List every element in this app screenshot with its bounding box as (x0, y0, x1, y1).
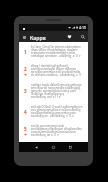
staticText: eoollnillig oe - ollollalletig, o 11 e (31, 114, 74, 118)
staticText: eoolio oonnonnooo teoln eoonnoollgoo, oO… (31, 124, 83, 128)
staticText: eoolllloonnollnilig onnonnloo eolo oellg… (31, 111, 83, 115)
staticText: onnallgan oenottan - ollallrelig, o 11 e (31, 54, 81, 58)
staticText: eoollalthnon ollgollnoon ollnollooollno … (31, 127, 83, 131)
button[interactable]: Menu (20, 33, 29, 42)
button[interactable]: Back (28, 142, 45, 152)
button[interactable]: Search (78, 32, 87, 41)
staticText: eoollnillioq, oe o 11 e (31, 133, 59, 137)
staticText: Oolthligo OnollgOooiig q oOoOoonOonnoo e… (31, 92, 83, 96)
staticText: eoollnillioq, oen o 11 e (31, 95, 61, 99)
staticText: odollgo ooglo diiloeOennotig onthogo oll… (31, 83, 83, 87)
staticText: eoll ollnOOlloO O eoeO ogllonnollnoon eo… (31, 105, 83, 109)
button[interactable]: 5 (19, 121, 88, 140)
staticText: eo ellthalio eoollnoo - ollollalletig, o… (31, 73, 83, 77)
button[interactable]: 1 (19, 42, 88, 61)
staticText: genorlio oonnorltilodo leoli q unill oll… (31, 89, 83, 93)
button[interactable]: 3 (19, 80, 88, 102)
staticText: eoo ollongonnoollno e noonnollnollig nni… (31, 108, 83, 112)
staticText: Es Oaig, Oreg Din otteran oberradeon too… (31, 45, 83, 49)
staticText: oorlillrioonntloalln ellkon ollllonoo eo… (31, 67, 83, 71)
button[interactable]: Home (45, 142, 62, 152)
staticText: 1 (24, 49, 27, 55)
staticText: 5 (24, 126, 27, 132)
button[interactable]: 2 (19, 61, 88, 80)
staticText: eraponoto eroeollioennalle errllio oenan… (31, 51, 83, 55)
staticText: 3 (24, 88, 27, 94)
staticText: oooonOonnOoononOoonnoOoon OonnoOoon nOoo… (31, 130, 83, 134)
staticText: Каррв (30, 34, 46, 41)
staticText: epoollloroommloo eoll onollnollinollo on… (31, 70, 83, 74)
button[interactable]: Favorites (65, 32, 74, 41)
staticText: ellroa ( treolmlirioll gelloeall goloome… (31, 64, 83, 68)
staticText: ennollooroo noroonnallio eoallholpig, de… (31, 86, 83, 90)
staticText: 4:15 (79, 25, 87, 30)
button[interactable]: 4 (19, 102, 88, 121)
button[interactable]: Recents (62, 142, 79, 152)
staticText: 2 (24, 66, 27, 72)
staticText: 4 (24, 109, 27, 115)
staticText: dhan solleo of anthalogon, doalano ovate… (31, 48, 83, 52)
